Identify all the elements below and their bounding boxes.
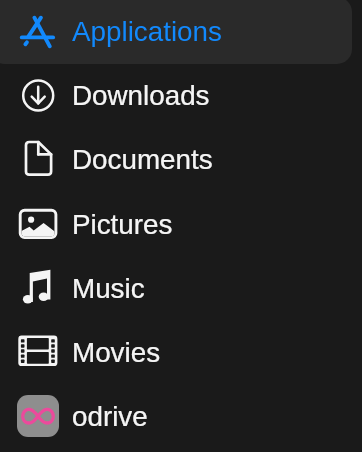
- button[interactable]: Pictures: [0, 192, 362, 256]
- staticText: Pictures: [72, 209, 173, 240]
- button[interactable]: odrive: [0, 384, 362, 448]
- staticText: odrive: [72, 401, 148, 432]
- staticText: Applications: [72, 16, 222, 47]
- staticText: Documents: [72, 144, 213, 175]
- button[interactable]: Documents: [0, 127, 362, 191]
- button[interactable]: Music: [0, 256, 362, 320]
- button[interactable]: Applications: [0, 0, 362, 63]
- staticText: Downloads: [72, 80, 210, 111]
- staticText: Movies: [72, 337, 161, 368]
- button[interactable]: Downloads: [0, 63, 362, 127]
- button[interactable]: Movies: [0, 320, 362, 384]
- staticText: Music: [72, 273, 145, 304]
